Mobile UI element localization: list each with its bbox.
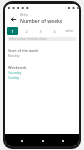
staticText: Saturday	[8, 71, 22, 75]
button[interactable]: 4	[48, 27, 60, 35]
button[interactable]: other	[62, 27, 77, 35]
staticText: 4	[53, 29, 56, 34]
staticText: 2	[25, 29, 28, 34]
staticText: 1	[11, 29, 14, 34]
button[interactable]: Home	[38, 136, 47, 145]
button[interactable]: Recent apps	[58, 136, 67, 145]
button[interactable]: Back	[8, 14, 18, 24]
button[interactable]: 1	[7, 27, 18, 35]
button[interactable]: Select number of weeks shown	[8, 37, 76, 41]
button[interactable]: Start of the week	[5, 47, 79, 59]
staticText: Sunday	[8, 76, 20, 80]
staticText: Number of weeks	[20, 18, 63, 25]
staticText: Start of the week	[8, 48, 39, 53]
staticText: Weeks	[20, 13, 28, 17]
staticText: 3	[39, 29, 42, 34]
button[interactable]: 2	[20, 27, 32, 35]
button[interactable]: Back	[17, 136, 26, 145]
staticText: Select number of weeks shown	[9, 37, 47, 41]
button[interactable]: Sunday	[8, 76, 20, 80]
staticText: Monday	[8, 54, 20, 58]
staticText: Weekends	[8, 65, 27, 70]
staticText: other	[65, 29, 74, 33]
button[interactable]: Saturday	[8, 71, 22, 75]
button[interactable]: 3	[34, 27, 46, 35]
